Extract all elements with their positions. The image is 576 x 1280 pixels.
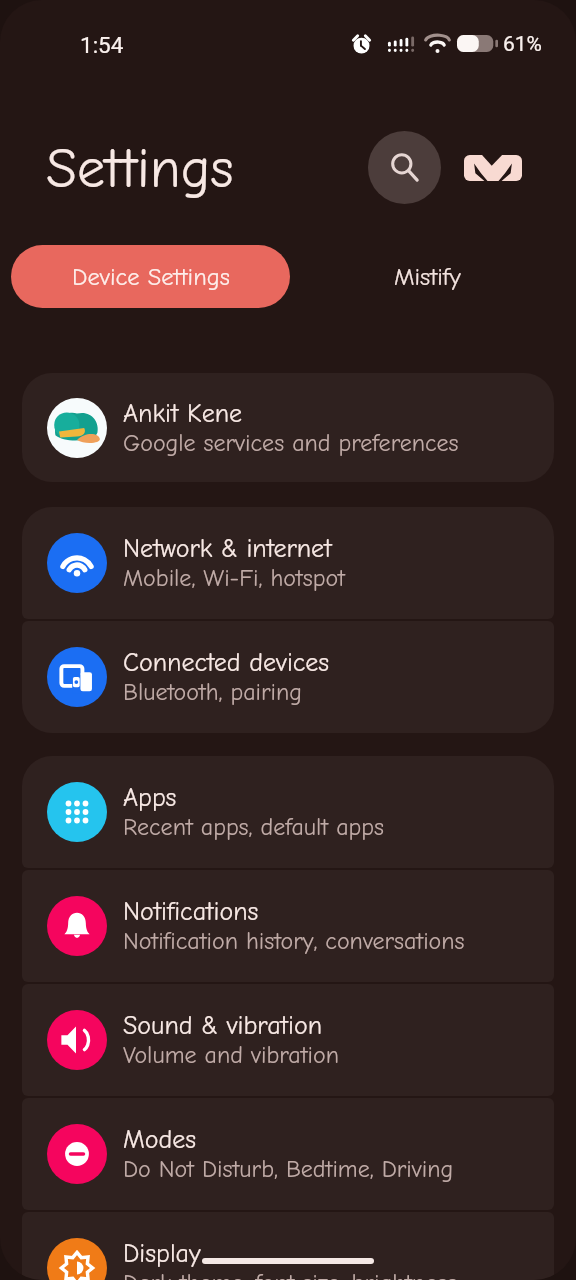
button[interactable]: Display [22, 1212, 554, 1280]
staticText: Recent apps, default apps [123, 813, 384, 841]
staticText: Notifications [123, 897, 259, 927]
button[interactable]: Modes [22, 1098, 554, 1210]
staticText: Network & internet [123, 534, 332, 564]
button[interactable]: Apps [22, 756, 554, 868]
staticText: 1:54 [80, 32, 124, 58]
staticText: Mobile, Wi-Fi, hotspot [123, 564, 345, 592]
staticText: Mistify [394, 263, 461, 291]
staticText: Google services and preferences [123, 429, 459, 457]
button[interactable]: Device Settings [11, 245, 290, 308]
staticText: Display [123, 1239, 201, 1269]
staticText: Apps [123, 783, 177, 813]
staticText: 61% [503, 32, 542, 57]
staticText: Settings [46, 137, 234, 201]
staticText: Device Settings [72, 263, 230, 291]
button[interactable]: Notifications [22, 870, 554, 982]
staticText: Connected devices [123, 648, 330, 678]
staticText: Sound & vibration [123, 1011, 323, 1041]
staticText: Volume and vibration [123, 1041, 339, 1069]
button[interactable]: Sound & vibration [22, 984, 554, 1096]
button[interactable]: Network & internet [22, 507, 554, 619]
staticText: Modes [123, 1125, 197, 1155]
button[interactable]: Mistify logo [464, 155, 522, 181]
staticText: Do Not Disturb, Bedtime, Driving [123, 1155, 454, 1183]
staticText: Dark theme, font size, brightness [123, 1269, 458, 1280]
staticText: Ankit Kene [123, 399, 243, 429]
button[interactable]: Connected devices [22, 621, 554, 733]
staticText: Notification history, conversations [123, 927, 465, 955]
button[interactable]: Mistify [300, 245, 555, 308]
staticText: Bluetooth, pairing [123, 678, 302, 706]
button[interactable]: Search [368, 131, 441, 204]
button[interactable]: Ankit Kene [22, 373, 554, 482]
